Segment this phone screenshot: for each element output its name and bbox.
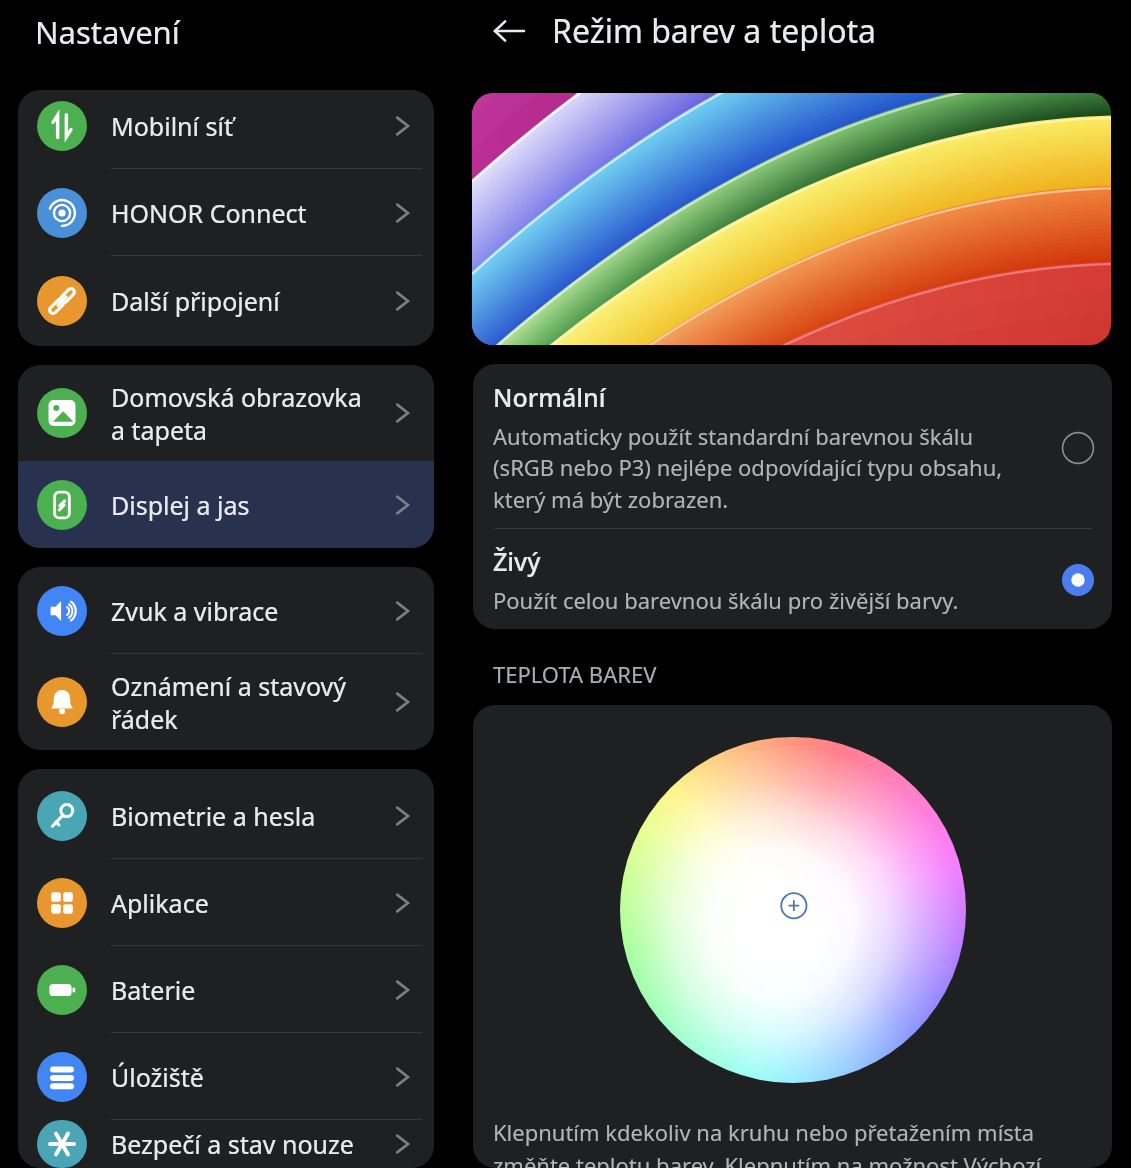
staticText: Aplikace bbox=[111, 886, 387, 920]
button[interactable]: Normální bbox=[473, 364, 1112, 528]
button[interactable]: Zvuk a vibrace bbox=[18, 567, 434, 654]
button[interactable]: HONOR Connect bbox=[18, 169, 434, 256]
button[interactable]: Mobilní síť bbox=[18, 90, 434, 169]
button[interactable]: Back bbox=[486, 8, 532, 54]
button[interactable]: Oznámení a stavový řádek bbox=[18, 654, 434, 750]
staticText: Normální bbox=[493, 380, 606, 414]
staticText: Režim barev a teplota bbox=[552, 9, 877, 53]
staticText: Další připojení bbox=[111, 284, 387, 318]
button[interactable]: Displej a jas bbox=[18, 461, 434, 548]
staticText: Mobilní síť bbox=[111, 109, 387, 143]
staticText: Úložiště bbox=[111, 1060, 387, 1094]
staticText: Biometrie a hesla bbox=[111, 799, 387, 833]
button[interactable]: Úložiště bbox=[18, 1033, 434, 1120]
staticText: Automaticky použít standardní barevnou š… bbox=[493, 421, 1003, 515]
staticText: Oznámení a stavový řádek bbox=[111, 669, 387, 736]
staticText: Nastavení bbox=[35, 11, 180, 53]
staticText: Domovská obrazovka a tapeta bbox=[111, 380, 387, 447]
staticText: Živý bbox=[493, 544, 541, 578]
staticText: Baterie bbox=[111, 973, 387, 1007]
button[interactable]: Selected bbox=[1058, 560, 1098, 600]
button[interactable]: Domovská obrazovka a tapeta bbox=[18, 365, 434, 461]
staticText: Displej a jas bbox=[111, 488, 387, 522]
staticText: TEPLOTA BAREV bbox=[493, 659, 657, 689]
staticText: Použít celou barevnou škálu pro živější … bbox=[493, 585, 959, 615]
button[interactable]: Další připojení bbox=[18, 256, 434, 346]
button[interactable]: Bezpečí a stav nouze bbox=[18, 1120, 434, 1168]
button[interactable]: Aplikace bbox=[18, 859, 434, 946]
button[interactable]: Baterie bbox=[18, 946, 434, 1033]
button[interactable]: Živý bbox=[473, 529, 1112, 629]
staticText: Zvuk a vibrace bbox=[111, 594, 387, 628]
staticText: Bezpečí a stav nouze bbox=[111, 1127, 387, 1161]
staticText: HONOR Connect bbox=[111, 196, 387, 230]
staticText: Klepnutím kdekoliv na kruhu nebo přetaže… bbox=[493, 1117, 1042, 1168]
button[interactable]: Biometrie a hesla bbox=[18, 772, 434, 859]
button[interactable]: Select bbox=[1058, 428, 1098, 468]
